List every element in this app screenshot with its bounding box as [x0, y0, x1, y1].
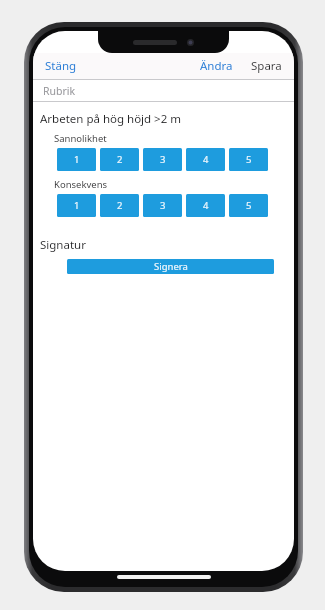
button[interactable]: Betyg 2	[100, 194, 139, 217]
staticText: Arbeten på hög höjd >2 m	[40, 111, 182, 127]
button[interactable]: Spara	[242, 54, 294, 78]
staticText: 3	[160, 153, 166, 166]
staticText: Konsekvens	[54, 178, 108, 191]
staticText: 4	[203, 199, 209, 212]
staticText: 4	[203, 153, 209, 166]
staticText: Ändra	[200, 58, 233, 74]
button[interactable]: Betyg 1	[57, 148, 96, 171]
staticText: Rubrik	[43, 84, 76, 98]
button[interactable]: Betyg 2	[100, 148, 139, 171]
button[interactable]: Betyg 5	[229, 194, 268, 217]
staticText: 5	[246, 153, 252, 166]
button[interactable]: Ändra	[191, 54, 242, 78]
button[interactable]: Stäng	[33, 54, 89, 78]
staticText: 2	[117, 199, 123, 212]
staticText: 1	[74, 199, 80, 212]
staticText: Spara	[251, 58, 282, 74]
button[interactable]: Betyg 4	[186, 148, 225, 171]
staticText: 5	[246, 199, 252, 212]
staticText: 2	[117, 153, 123, 166]
button[interactable]: Signera	[67, 259, 274, 274]
button[interactable]: Betyg 3	[143, 148, 182, 171]
button[interactable]: Betyg 4	[186, 194, 225, 217]
staticText: Signatur	[40, 237, 86, 253]
staticText: 1	[74, 153, 80, 166]
staticText: Signera	[154, 260, 188, 273]
staticText: Stäng	[45, 58, 77, 74]
button[interactable]: Betyg 1	[57, 194, 96, 217]
button[interactable]: Rubrik	[33, 80, 294, 101]
button[interactable]: Betyg 5	[229, 148, 268, 171]
staticText: Sannolikhet	[54, 132, 107, 145]
button[interactable]: Betyg 3	[143, 194, 182, 217]
staticText: 3	[160, 199, 166, 212]
